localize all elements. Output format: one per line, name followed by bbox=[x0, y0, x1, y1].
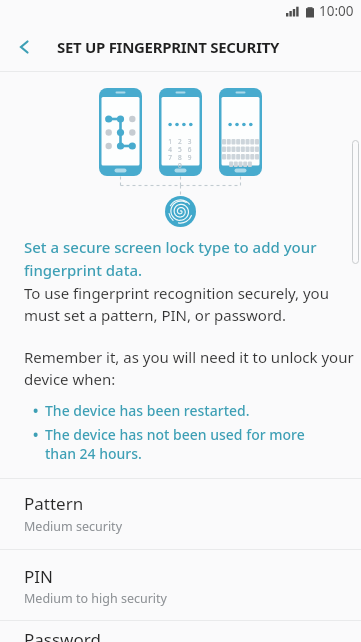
button[interactable] bbox=[0, 22, 48, 71]
staticText: SET UP FINGERPRINT SECURITY bbox=[57, 37, 280, 57]
staticText: 1 2 3 4 5 6 7 8 9 0 bbox=[163, 137, 199, 170]
staticText: To use fingerprint recognition securely,… bbox=[24, 283, 329, 326]
staticText: The device has been restarted. bbox=[45, 401, 250, 420]
staticText: Medium to high security bbox=[24, 590, 167, 607]
staticText: The device has not been used for more th… bbox=[45, 425, 305, 463]
staticText: Password bbox=[24, 628, 101, 642]
staticText: 10:00 bbox=[319, 2, 354, 20]
button[interactable]: PIN bbox=[0, 550, 361, 620]
staticText: Set a secure screen lock type to add you… bbox=[24, 237, 317, 280]
staticText: • bbox=[33, 401, 39, 420]
staticText: Remember it, as you will need it to unlo… bbox=[24, 347, 354, 390]
staticText: • bbox=[33, 425, 39, 444]
button[interactable] bbox=[0, 623, 361, 642]
button[interactable]: Pattern bbox=[0, 479, 361, 549]
staticText: Pattern bbox=[24, 492, 84, 515]
staticText: Medium security bbox=[24, 518, 123, 535]
staticText: PIN bbox=[24, 565, 53, 588]
